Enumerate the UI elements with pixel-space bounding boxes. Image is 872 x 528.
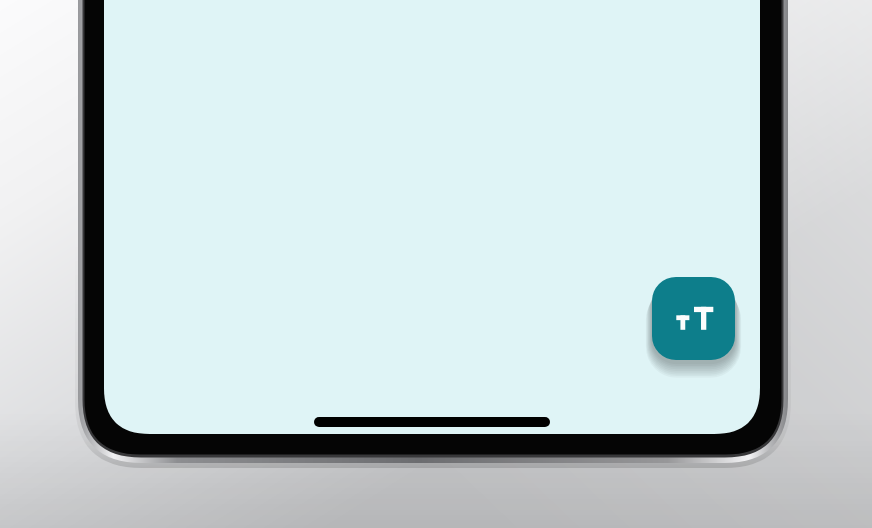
button[interactable]: Change text size: [652, 277, 735, 360]
